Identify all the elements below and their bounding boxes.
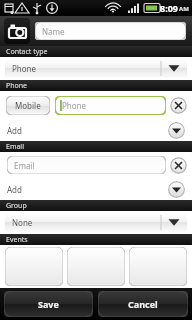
staticText: Phone [6, 81, 28, 91]
button[interactable]: Expand [168, 122, 185, 139]
button[interactable] [129, 247, 187, 286]
button[interactable]: Add [0, 119, 192, 141]
staticText: Phone [62, 100, 87, 111]
staticText: Mobile [15, 100, 41, 111]
button[interactable] [5, 247, 63, 286]
staticText: Email [14, 160, 35, 171]
button[interactable]: Email [7, 156, 166, 174]
button[interactable]: Cancel [98, 291, 188, 317]
staticText: Cancel [128, 298, 158, 310]
button[interactable]: Phone [55, 96, 166, 115]
staticText: Save [38, 298, 59, 310]
button[interactable]: Mobile [6, 96, 50, 115]
staticText: AM [179, 5, 189, 13]
button[interactable]: Clear [170, 97, 187, 114]
staticText: Name [42, 26, 65, 37]
button[interactable]: Clear [170, 157, 187, 174]
button[interactable]: Save [4, 291, 93, 317]
staticText: Contact type [6, 47, 48, 57]
staticText: None [12, 217, 33, 228]
staticText: Phone [12, 63, 37, 74]
button[interactable]: Name [35, 22, 186, 40]
staticText: Email [6, 142, 24, 152]
button[interactable]: Add photo [4, 18, 30, 44]
staticText: 8:09 [160, 2, 178, 14]
staticText: Events [6, 235, 28, 245]
button[interactable]: Phone [5, 59, 187, 78]
staticText: Add [7, 125, 22, 136]
button[interactable] [67, 247, 125, 286]
staticText: Add [7, 184, 22, 195]
button[interactable]: Expand [168, 181, 185, 198]
button[interactable]: None [5, 213, 187, 232]
button[interactable]: Add [0, 178, 192, 200]
staticText: Group [6, 201, 27, 211]
